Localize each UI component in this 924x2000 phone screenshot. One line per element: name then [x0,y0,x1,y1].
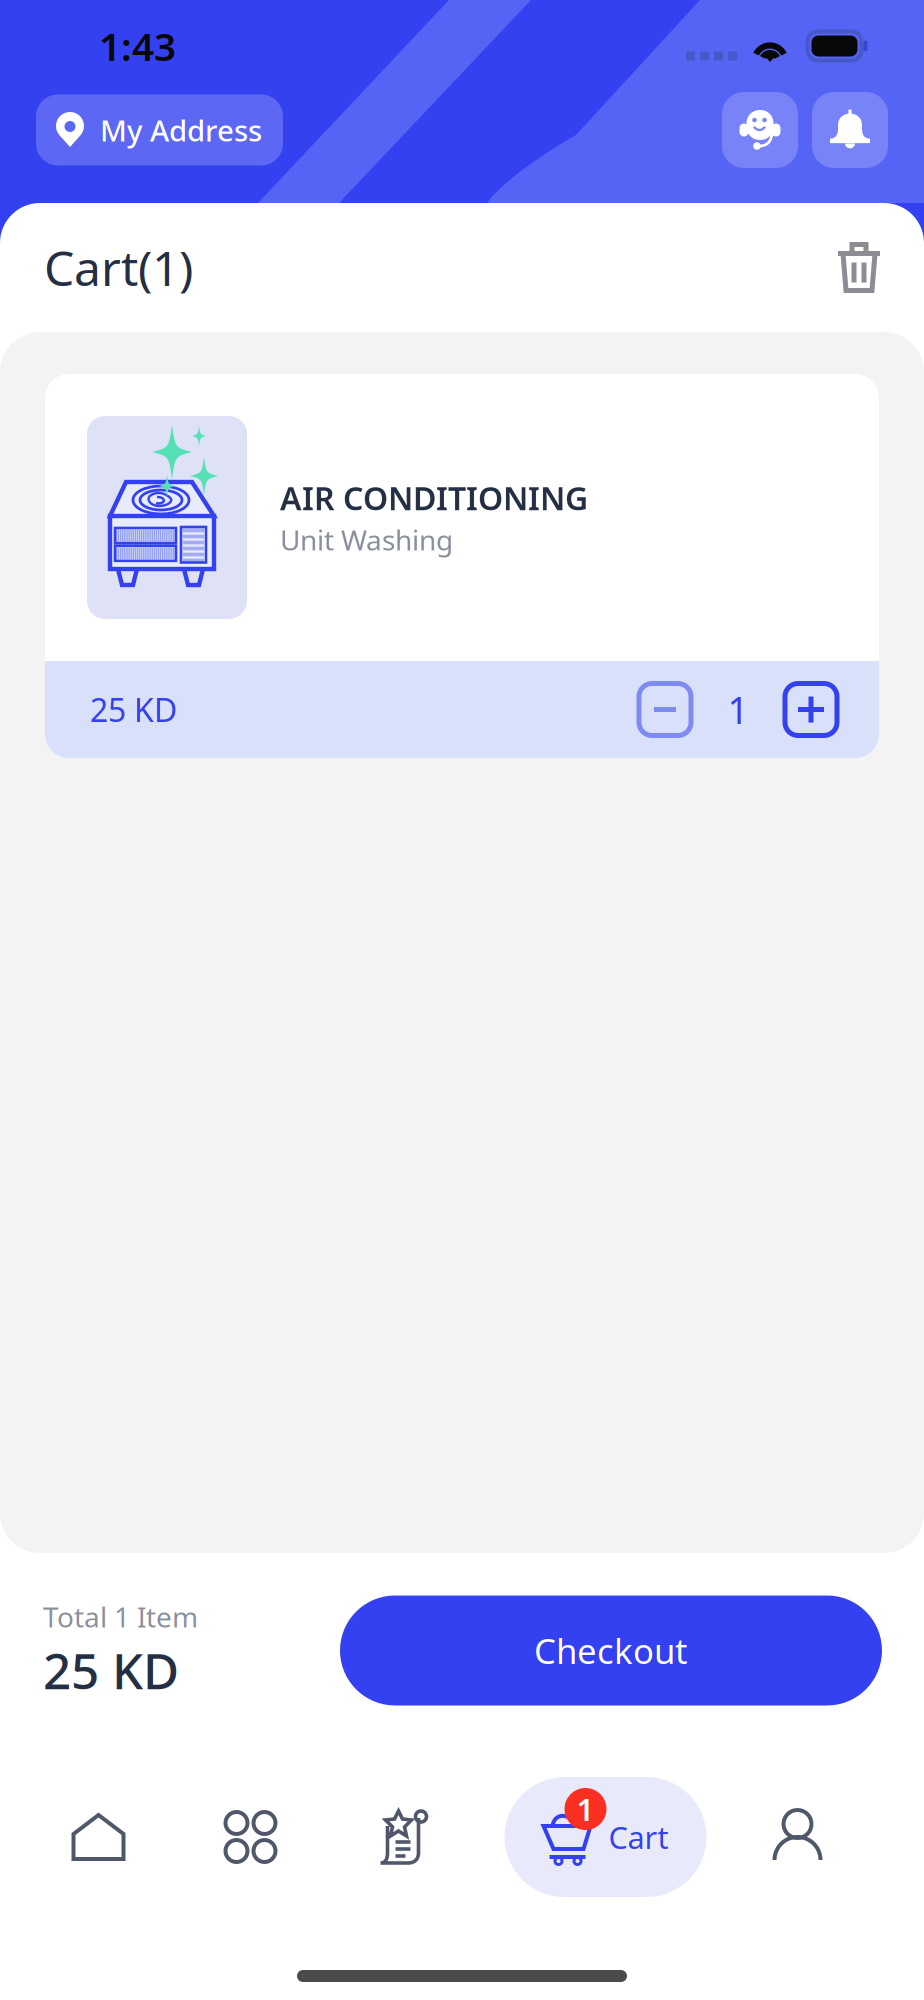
staticText: Total 1 Item [43,1598,198,1635]
staticText: Cart(1) [44,236,193,299]
button[interactable]: Categories [184,1777,342,1897]
button[interactable]: Orders [342,1777,504,1897]
staticText: 1 [727,685,748,734]
staticText: Checkout [534,1627,688,1673]
button[interactable]: 1 [504,1777,706,1897]
button[interactable]: Decrease quantity [639,683,691,735]
button[interactable]: My Address [36,94,283,165]
button[interactable]: Support [722,92,798,168]
staticText: 1:43 [99,20,176,72]
staticText: Cart [608,1817,668,1857]
staticText: My Address [100,110,262,149]
staticText: AIR CONDITIONING [280,477,588,519]
button[interactable]: Profile [706,1777,888,1897]
staticText: 25 KD [43,1637,179,1703]
button[interactable]: Checkout [340,1595,882,1705]
button[interactable]: Home [20,1777,184,1897]
button[interactable]: Notifications [812,92,888,168]
staticText: Unit Washing [280,521,453,558]
staticText: 25 KD [90,688,177,731]
button[interactable]: Delete all [836,240,882,294]
staticText: 1 [576,1789,594,1829]
button[interactable]: Increase quantity [785,683,837,735]
